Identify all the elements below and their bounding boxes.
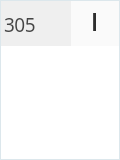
staticText: 305 (4, 12, 36, 38)
button[interactable]: 305 (1, 1, 71, 46)
button[interactable]: Text input caret (71, 1, 119, 46)
